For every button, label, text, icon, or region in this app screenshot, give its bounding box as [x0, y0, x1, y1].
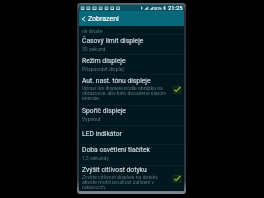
staticText: Přizpůsobit displej: [82, 66, 124, 72]
button[interactable]: LED indikátor: [79, 126, 184, 144]
staticText: obrazovce, aby bylo dosaženo úspory: [82, 90, 167, 95]
staticText: Zobrazení: [88, 15, 119, 23]
staticText: rukavicích.: [82, 184, 107, 189]
staticText: Spořič displeje: [82, 107, 126, 115]
staticText: LED indikátor: [82, 130, 122, 138]
staticText: Upraví jas displeje podle obrázku na: [82, 85, 163, 90]
button[interactable]: Back: [79, 11, 184, 26]
staticText: abyste mohli používat zařízení v: [82, 179, 154, 184]
staticText: ně dívate: [82, 28, 103, 34]
button[interactable]: Doba osvětlení tlačítek: [79, 145, 184, 165]
button[interactable]: Režim displeje: [79, 55, 184, 74]
button[interactable]: Časový limit displeje: [79, 35, 184, 54]
button[interactable]: Toggle Zvýšit citlivost dotyku: [173, 175, 181, 183]
button[interactable]: Spořič displeje: [79, 106, 184, 125]
staticText: Doba osvětlení tlačítek: [82, 146, 150, 154]
staticText: 50%: [154, 6, 162, 11]
staticText: Zvyšte citlivost displeje na dotyky,: [82, 174, 159, 179]
staticText: energie.: [82, 95, 101, 100]
staticText: 1,5 sekundy: [82, 155, 109, 161]
staticText: 21:25: [168, 5, 183, 11]
button[interactable]: ně dívate: [79, 26, 184, 34]
staticText: Režim displeje: [82, 57, 126, 65]
button[interactable]: Zvýšit citlivost dotyku: [79, 166, 184, 191]
other: Back: [82, 16, 85, 22]
staticText: 30 sekund: [82, 46, 106, 52]
button[interactable]: Aut. nast. tónu displeje: [79, 75, 184, 105]
staticText: Aut. nast. tónu displeje: [82, 77, 151, 85]
staticText: Časový limit displeje: [82, 37, 144, 45]
staticText: Zvýšit citlivost dotyku: [82, 166, 147, 174]
button[interactable]: Toggle Aut. nast. tónu displeje: [173, 86, 181, 94]
staticText: Vypnout: [82, 116, 101, 122]
